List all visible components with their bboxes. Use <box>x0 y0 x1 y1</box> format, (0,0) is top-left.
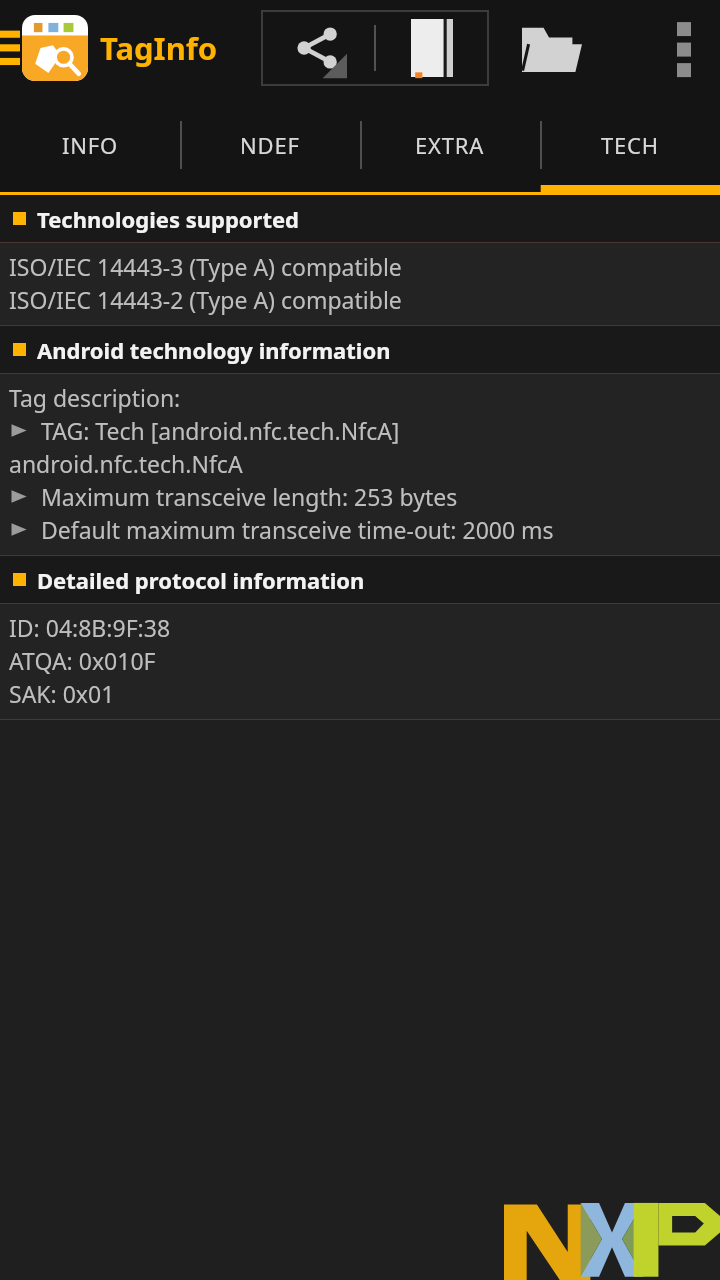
staticText: ISO/IEC 14443-2 (Type A) compatible <box>9 284 402 315</box>
staticText: TECH <box>601 130 659 160</box>
staticText: Technologies supported <box>37 204 299 234</box>
button[interactable]: TagInfo <box>22 15 218 81</box>
button[interactable]: Navigation menu <box>0 17 22 79</box>
button[interactable]: Android technology information <box>0 326 720 373</box>
staticText: Detailed protocol information <box>37 565 365 595</box>
button[interactable]: TECH <box>540 95 720 195</box>
staticText: ID: 04:8B:9F:38 <box>9 612 171 643</box>
staticText: EXTRA <box>415 130 485 160</box>
button[interactable]: Saved tags <box>376 11 488 85</box>
button[interactable]: Open file <box>506 2 598 94</box>
staticText: ISO/IEC 14443-3 (Type A) compatible <box>9 251 402 282</box>
button[interactable]: INFO <box>0 95 180 195</box>
staticText: SAK: 0x01 <box>9 678 115 709</box>
button[interactable]: Technologies supported <box>0 195 720 242</box>
button[interactable]: NDEF <box>180 95 360 195</box>
staticText: TagInfo <box>100 27 218 69</box>
staticText: Maximum transceive length: 253 bytes <box>41 481 458 512</box>
staticText: Default maximum transceive time-out: 200… <box>41 514 554 545</box>
staticText: Android technology information <box>37 335 391 365</box>
button[interactable]: More options <box>648 0 720 95</box>
staticText: ATQA: 0x010F <box>9 645 156 676</box>
button[interactable]: Detailed protocol information <box>0 556 720 603</box>
staticText: TAG: Tech [android.nfc.tech.NfcA] <box>41 415 400 446</box>
staticText: NDEF <box>240 130 300 160</box>
staticText: android.nfc.tech.NfcA <box>9 448 243 479</box>
staticText: Tag description: <box>9 382 181 413</box>
button[interactable]: EXTRA <box>360 95 540 195</box>
staticText: INFO <box>62 130 118 160</box>
button[interactable]: Share <box>262 11 374 85</box>
